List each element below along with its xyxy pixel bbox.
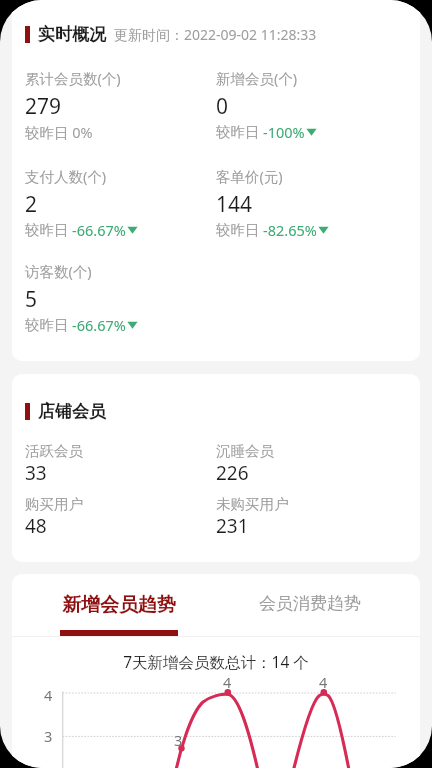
- staticText: 客单价(元): [216, 166, 283, 186]
- staticText: 店铺会员: [38, 401, 106, 422]
- staticText: 更新时间：2022-09-02 11:28:33: [114, 25, 317, 44]
- staticText: 支付人数(个): [25, 166, 107, 186]
- staticText: 5: [25, 285, 38, 314]
- staticText: 144: [216, 190, 253, 219]
- staticText: 访客数(个): [25, 261, 92, 281]
- button[interactable]: 新增会员趋势: [60, 593, 178, 636]
- staticText: 33: [25, 460, 47, 486]
- staticText: 226: [216, 460, 249, 486]
- staticText: 4: [44, 685, 53, 705]
- button[interactable]: 购买用户: [25, 495, 216, 539]
- staticText: 购买用户: [25, 495, 83, 513]
- staticText: -66.67%: [72, 315, 126, 335]
- button[interactable]: 客单价(元): [216, 166, 407, 240]
- staticText: 较昨日: [25, 316, 69, 334]
- staticText: 较昨日: [216, 123, 260, 141]
- button[interactable]: 新增会员(个): [216, 68, 407, 142]
- staticText: 0: [216, 92, 229, 121]
- staticText: 新增会员(个): [216, 68, 298, 88]
- staticText: -66.67%: [72, 220, 126, 240]
- staticText: 48: [25, 513, 47, 539]
- staticText: 2: [25, 190, 38, 219]
- staticText: -82.65%: [263, 220, 317, 240]
- button[interactable]: 会员消费趋势: [259, 593, 361, 614]
- staticText: 3: [174, 730, 183, 750]
- button[interactable]: 累计会员数(个): [25, 68, 216, 142]
- staticText: 4: [319, 672, 328, 692]
- staticText: 新增会员趋势: [62, 593, 176, 617]
- staticText: -100%: [263, 122, 305, 142]
- staticText: 7天新增会员数总计：14 个: [12, 651, 420, 672]
- staticText: 累计会员数(个): [25, 68, 121, 88]
- button[interactable]: 访客数(个): [25, 261, 216, 335]
- button[interactable]: 未购买用户: [216, 495, 407, 539]
- button[interactable]: 支付人数(个): [25, 166, 216, 240]
- button[interactable]: 沉睡会员: [216, 442, 407, 486]
- staticText: 较昨日 0%: [25, 122, 93, 142]
- staticText: 活跃会员: [25, 442, 83, 460]
- staticText: 实时概况: [38, 24, 106, 45]
- staticText: 沉睡会员: [216, 442, 274, 460]
- staticText: 会员消费趋势: [259, 593, 361, 614]
- staticText: 231: [216, 513, 249, 539]
- staticText: 未购买用户: [216, 495, 289, 513]
- staticText: 较昨日: [216, 221, 260, 239]
- staticText: 279: [25, 92, 62, 121]
- staticText: 较昨日: [25, 221, 69, 239]
- staticText: 3: [44, 726, 53, 746]
- staticText: 4: [223, 672, 232, 692]
- button[interactable]: 活跃会员: [25, 442, 216, 486]
